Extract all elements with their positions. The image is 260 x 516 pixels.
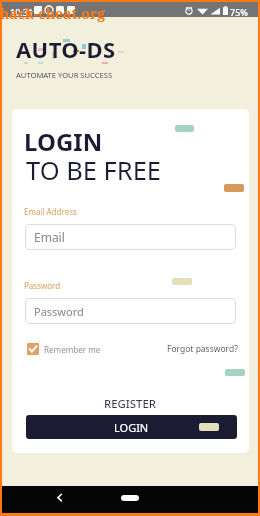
staticText: Remember me <box>44 344 101 355</box>
staticText: 10:31 <box>10 6 34 18</box>
staticText: REGISTER <box>104 396 157 412</box>
button[interactable]: Back <box>50 489 68 507</box>
staticText: hack-cheat.org <box>0 4 106 23</box>
button[interactable]: Email <box>25 224 236 250</box>
staticText: Forgot password? <box>167 343 238 355</box>
staticText: 75% <box>230 6 248 18</box>
staticText: Password <box>24 280 61 291</box>
button[interactable]: Remember me <box>27 343 101 355</box>
button[interactable]: LOGIN <box>26 415 237 439</box>
button[interactable]: Forgot password? <box>167 343 238 355</box>
button[interactable]: Home <box>121 495 139 501</box>
button[interactable]: REGISTER <box>92 392 169 412</box>
button[interactable]: Password <box>25 298 236 324</box>
staticText: Password <box>34 304 84 319</box>
staticText: LOGIN <box>114 420 149 435</box>
staticText: AUTO-DS <box>16 34 116 64</box>
staticText: TO BE FREE <box>26 153 162 188</box>
staticText: Email <box>34 229 65 245</box>
staticText: AUTOMATE YOUR SUCCESS <box>16 70 113 80</box>
staticText: LOGIN <box>24 125 103 158</box>
staticText: Email Address <box>24 206 77 217</box>
